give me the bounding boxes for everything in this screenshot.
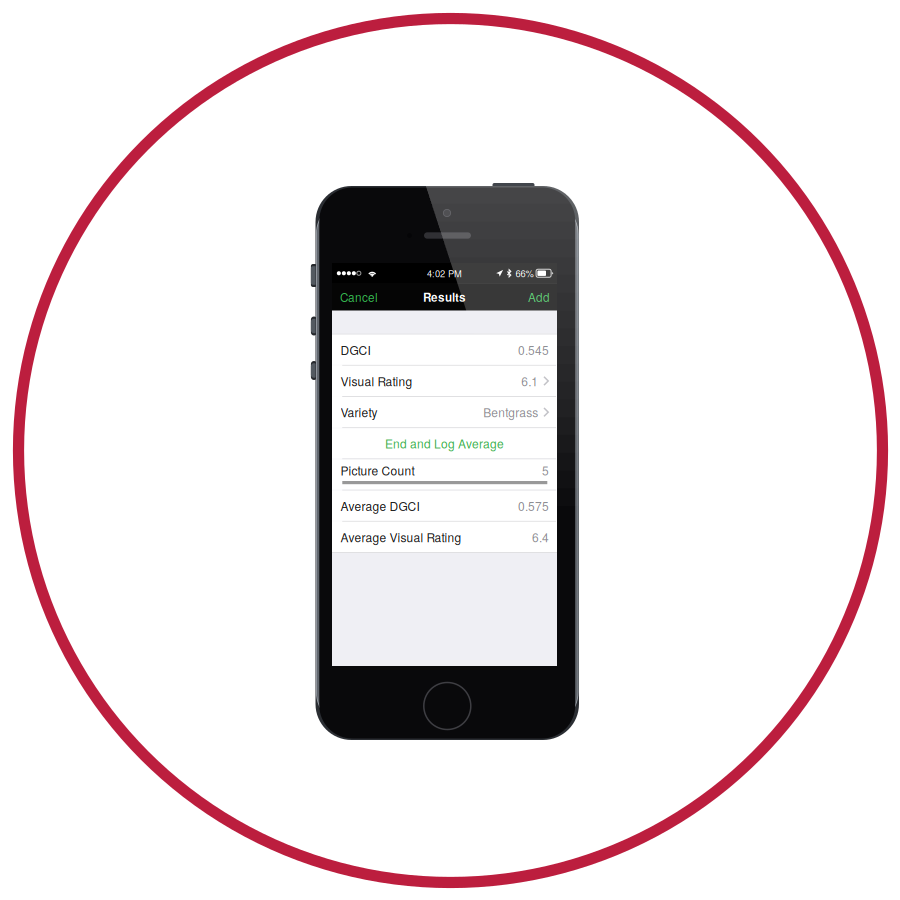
staticText: 6.4 bbox=[532, 528, 549, 546]
staticText: Variety bbox=[340, 404, 377, 421]
staticText: 0.575 bbox=[518, 497, 549, 514]
staticText: Results bbox=[423, 289, 466, 305]
staticText: 66% bbox=[516, 267, 534, 280]
button[interactable]: End and Log Average bbox=[332, 428, 557, 458]
staticText: End and Log Average bbox=[385, 435, 504, 452]
staticText: 4:02 PM bbox=[427, 267, 462, 280]
button[interactable]: Visual Rating bbox=[332, 366, 557, 396]
staticText: 0.545 bbox=[518, 341, 549, 358]
button[interactable]: Average Visual Rating bbox=[332, 522, 557, 552]
staticText: Add bbox=[528, 289, 550, 305]
staticText: Cancel bbox=[340, 289, 378, 305]
button[interactable]: Average DGCI bbox=[332, 491, 557, 521]
staticText: Picture Count bbox=[340, 462, 414, 479]
button[interactable]: DGCI bbox=[332, 335, 557, 365]
staticText: 5 bbox=[542, 462, 549, 479]
button[interactable]: Variety bbox=[332, 397, 557, 427]
staticText: Average DGCI bbox=[340, 497, 419, 514]
staticText: Visual Rating bbox=[340, 372, 412, 390]
button[interactable]: Home bbox=[424, 682, 471, 729]
button[interactable]: Cancel bbox=[332, 283, 386, 310]
staticText: Bentgrass bbox=[483, 404, 538, 421]
staticText: Average Visual Rating bbox=[340, 528, 461, 546]
button[interactable]: Add bbox=[520, 283, 557, 310]
staticText: DGCI bbox=[340, 341, 370, 358]
staticText: 6.1 bbox=[521, 372, 538, 390]
